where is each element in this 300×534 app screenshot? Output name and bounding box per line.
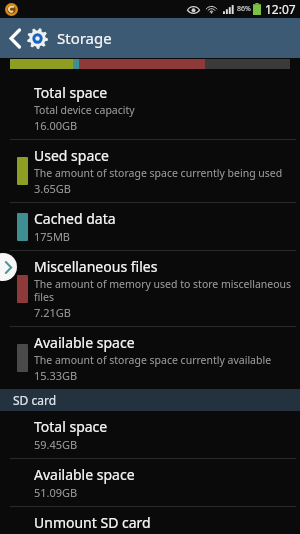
button[interactable]: Available space xyxy=(0,459,300,506)
button[interactable]: SD card xyxy=(0,389,300,411)
staticText: SD card xyxy=(13,392,57,408)
button[interactable]: Available space xyxy=(0,327,300,389)
staticText: 15.33GB xyxy=(34,368,78,383)
staticText: Unmount SD card xyxy=(34,513,151,528)
staticText: 7.21GB xyxy=(34,305,71,320)
staticText: Total device capacity xyxy=(34,103,135,117)
staticText: The amount of storage space currently be… xyxy=(34,166,283,180)
staticText: Available space xyxy=(34,465,135,484)
staticText: Used space xyxy=(34,146,109,165)
staticText: 51.09GB xyxy=(34,485,78,500)
staticText: 59.45GB xyxy=(34,437,78,452)
staticText: Cached data xyxy=(34,209,116,228)
button[interactable]: Open side panel xyxy=(0,253,17,281)
staticText: The amount of memory used to store misce… xyxy=(34,277,292,304)
button[interactable]: Used space xyxy=(0,140,300,202)
staticText: 16.00GB xyxy=(34,118,78,133)
button[interactable]: Total space xyxy=(0,77,300,139)
staticText: Storage xyxy=(57,28,112,48)
button[interactable]: Navigate up xyxy=(0,21,26,55)
staticText: The amount of storage space currently av… xyxy=(34,353,272,367)
staticText: 3.65GB xyxy=(34,181,71,196)
button[interactable]: Total space xyxy=(0,411,300,458)
button[interactable]: Cached data xyxy=(0,203,300,250)
staticText: 175MB xyxy=(34,229,71,244)
staticText: Miscellaneous files xyxy=(34,257,158,276)
staticText: 12:07 xyxy=(265,1,296,17)
staticText: Total space xyxy=(34,83,108,102)
staticText: Available space xyxy=(34,333,135,352)
staticText: 86% xyxy=(237,4,251,14)
staticText: Total space xyxy=(34,417,108,436)
button[interactable]: Unmount SD card xyxy=(0,507,300,534)
button[interactable]: Miscellaneous files xyxy=(0,251,300,326)
